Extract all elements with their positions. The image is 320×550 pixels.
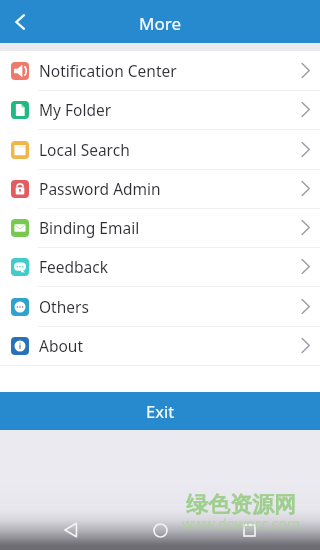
staticText: My Folder	[39, 99, 112, 120]
button[interactable]: Exit	[0, 392, 320, 430]
staticText: Others	[39, 296, 89, 317]
staticText: About	[39, 335, 83, 356]
staticText: 绿色资源网	[186, 491, 296, 519]
button[interactable]: Binding Email	[0, 208, 320, 247]
button[interactable]: Local Search	[0, 130, 320, 169]
staticText: Notification Center	[39, 60, 177, 81]
button[interactable]: Notification Center	[0, 51, 320, 90]
staticText: www.downcc.com	[182, 514, 301, 533]
button[interactable]: Home	[140, 510, 180, 550]
button[interactable]: Others	[0, 287, 320, 326]
staticText: Password Admin	[39, 178, 161, 199]
staticText: Exit	[146, 400, 175, 422]
button[interactable]: Password Admin	[0, 169, 320, 208]
button[interactable]: About	[0, 326, 320, 365]
button[interactable]: My Folder	[0, 90, 320, 129]
button[interactable]: Back	[0, 0, 44, 43]
button[interactable]: Feedback	[0, 247, 320, 286]
button[interactable]: Recents	[229, 510, 269, 550]
staticText: Binding Email	[39, 217, 140, 238]
staticText: Feedback	[39, 256, 109, 277]
staticText: Local Search	[39, 139, 130, 160]
staticText: More	[139, 12, 181, 35]
button[interactable]: Back	[51, 510, 91, 550]
